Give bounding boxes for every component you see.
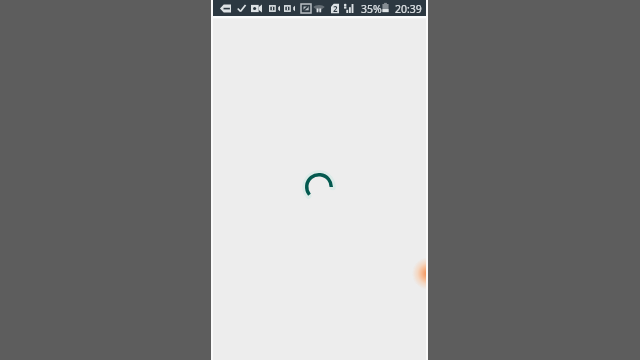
staticText: 2 — [333, 3, 338, 14]
staticText: 20:39 — [395, 2, 422, 16]
staticText: 35% — [361, 2, 382, 16]
button[interactable]: Add — [412, 259, 428, 288]
